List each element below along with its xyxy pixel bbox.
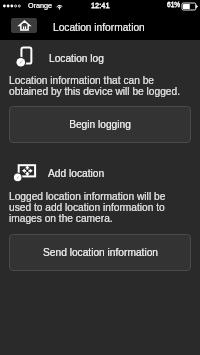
staticText: Logged location information will be used… bbox=[9, 191, 188, 224]
staticText: Begin logging bbox=[69, 119, 131, 130]
staticText: Send location information bbox=[43, 247, 158, 258]
staticText: Orange bbox=[28, 1, 52, 9]
button[interactable]: Send location information bbox=[9, 234, 191, 271]
staticText: 12:41 bbox=[91, 1, 110, 9]
button[interactable]: Begin logging bbox=[9, 106, 191, 143]
staticText: Location information that can be obtaine… bbox=[9, 75, 188, 97]
button[interactable]: Home bbox=[11, 18, 37, 33]
staticText: Add location bbox=[48, 168, 105, 179]
staticText: Location log bbox=[49, 53, 104, 64]
staticText: Location information bbox=[53, 22, 145, 33]
staticText: 61% bbox=[167, 1, 181, 8]
